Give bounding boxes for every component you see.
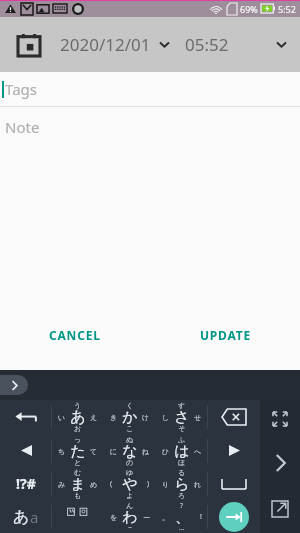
button[interactable]: Expand toolbar: [0, 375, 28, 395]
staticText: ~: [128, 523, 133, 533]
staticText: い: [58, 413, 66, 422]
staticText: 69%: [240, 3, 258, 15]
staticText: お: [74, 424, 82, 433]
button[interactable]: は: [156, 434, 208, 467]
staticText: た: [70, 442, 86, 461]
staticText: ふ: [178, 435, 186, 444]
staticText: ち: [58, 447, 66, 456]
staticText: こ: [126, 424, 134, 433]
staticText: へ: [194, 447, 202, 456]
staticText: も: [74, 491, 82, 500]
staticText: っ: [74, 435, 82, 444]
button[interactable]: あ: [52, 400, 104, 434]
staticText: ー: [143, 513, 150, 522]
button[interactable]: あ: [0, 500, 52, 533]
button[interactable]: 2020/12/01: [60, 33, 169, 56]
button[interactable]: た: [52, 434, 104, 467]
staticText: み: [58, 480, 66, 489]
staticText: わ: [122, 508, 138, 527]
staticText: か: [122, 408, 138, 427]
staticText: な: [122, 442, 138, 461]
staticText: す: [178, 401, 186, 410]
staticText: そ: [178, 424, 186, 433]
staticText: く: [126, 401, 134, 410]
staticText: や: [122, 475, 138, 494]
staticText: !: [200, 512, 202, 522]
staticText: は: [174, 442, 190, 461]
button[interactable]: か: [104, 400, 156, 434]
staticText: 5:52: [278, 3, 296, 15]
button[interactable]: CANCEL: [39, 321, 111, 349]
staticText: あ: [13, 507, 30, 527]
staticText: …: [179, 523, 185, 533]
staticText: む: [74, 468, 82, 477]
button[interactable]: Pick date: [14, 30, 44, 60]
button[interactable]: わ: [104, 500, 156, 533]
button[interactable]: ま: [52, 467, 104, 500]
staticText: 、: [175, 508, 190, 527]
button[interactable]: Tags: [0, 72, 300, 106]
staticText: を: [110, 513, 118, 522]
staticText: ら: [174, 475, 190, 494]
staticText: Note: [5, 117, 40, 137]
staticText: さ: [174, 408, 190, 427]
staticText: ね: [142, 447, 150, 456]
staticText: あ: [70, 408, 86, 427]
button[interactable]: [208, 467, 260, 500]
staticText: る: [178, 468, 186, 477]
staticText: ゆ: [126, 468, 134, 477]
staticText: 05:52: [185, 33, 229, 56]
staticText: Tags: [5, 79, 37, 99]
staticText: せ: [194, 413, 202, 422]
staticText: と: [74, 458, 82, 467]
staticText: き: [110, 413, 118, 422]
button[interactable]: [52, 500, 104, 533]
button[interactable]: Resize keyboard: [267, 406, 293, 432]
staticText: の: [126, 458, 134, 467]
button[interactable]: [208, 400, 260, 434]
button[interactable]: な: [104, 434, 156, 467]
button[interactable]: !?#: [0, 467, 52, 500]
button[interactable]: 05:52: [185, 33, 300, 56]
staticText: け: [142, 413, 150, 422]
button[interactable]: Floating keyboard: [266, 495, 294, 523]
staticText: ぬ: [126, 435, 134, 444]
staticText: ろ: [178, 491, 186, 500]
staticText: え: [90, 413, 98, 422]
staticText: 2020/12/01: [60, 33, 151, 56]
staticText: う: [74, 401, 82, 410]
staticText: CANCEL: [49, 327, 101, 343]
staticText: れ: [194, 480, 202, 489]
button[interactable]: Note: [5, 107, 300, 147]
button[interactable]: [208, 434, 260, 467]
staticText: a: [30, 507, 39, 527]
button[interactable]: UPDATE: [190, 321, 261, 349]
staticText: !?#: [16, 474, 36, 493]
button[interactable]: [0, 434, 52, 467]
staticText: め: [90, 480, 98, 489]
staticText: ): [147, 479, 150, 489]
staticText: て: [90, 447, 98, 456]
button[interactable]: や: [104, 467, 156, 500]
staticText: に: [110, 447, 118, 456]
staticText: ?: [180, 501, 184, 511]
staticText: ひ: [162, 447, 170, 456]
button[interactable]: [208, 500, 260, 533]
staticText: り: [162, 480, 170, 489]
button[interactable]: Next: [265, 448, 295, 478]
staticText: ま: [70, 475, 86, 494]
staticText: UPDATE: [200, 327, 251, 343]
staticText: 。: [162, 513, 169, 522]
staticText: ほ: [178, 458, 186, 467]
staticText: し: [162, 413, 170, 422]
button[interactable]: さ: [156, 400, 208, 434]
staticText: よ: [126, 491, 134, 500]
button[interactable]: 、: [156, 500, 208, 533]
button[interactable]: [0, 400, 52, 434]
button[interactable]: ら: [156, 467, 208, 500]
staticText: (: [110, 479, 113, 489]
staticText: ん: [126, 501, 134, 510]
